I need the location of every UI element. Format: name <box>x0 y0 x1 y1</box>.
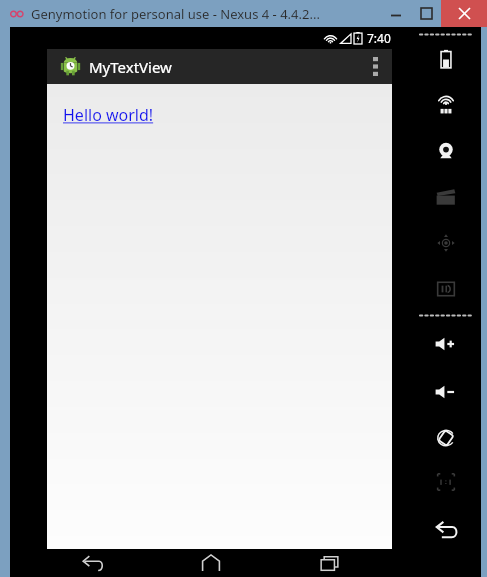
button[interactable]: More options <box>358 49 392 84</box>
button[interactable]: Volume down <box>424 379 468 405</box>
button[interactable]: Close <box>441 0 487 27</box>
button[interactable]: Hello world! <box>63 104 154 126</box>
button[interactable]: Screen record <box>424 184 468 210</box>
button[interactable]: Back <box>424 517 468 543</box>
button[interactable]: Volume up <box>424 331 468 357</box>
button[interactable]: Actual size <box>424 469 468 495</box>
staticText: Hello world! <box>63 104 154 126</box>
button[interactable]: Recent apps <box>307 549 351 577</box>
button[interactable]: Minimize <box>381 0 411 27</box>
staticText: MyTextView <box>89 57 172 77</box>
button[interactable]: Camera <box>424 138 468 164</box>
button[interactable]: Maximize <box>411 0 441 27</box>
button[interactable]: Battery <box>424 46 468 72</box>
button[interactable]: Identifiers <box>424 276 468 302</box>
button[interactable]: Home <box>189 549 233 577</box>
staticText: Genymotion for personal use - Nexus 4 - … <box>31 5 320 23</box>
button[interactable]: Accelerometer <box>424 230 468 256</box>
button[interactable]: Back <box>70 549 114 577</box>
staticText: 7:40 <box>367 30 391 46</box>
button[interactable]: GPS <box>424 93 468 119</box>
button[interactable]: Rotate <box>424 425 468 451</box>
